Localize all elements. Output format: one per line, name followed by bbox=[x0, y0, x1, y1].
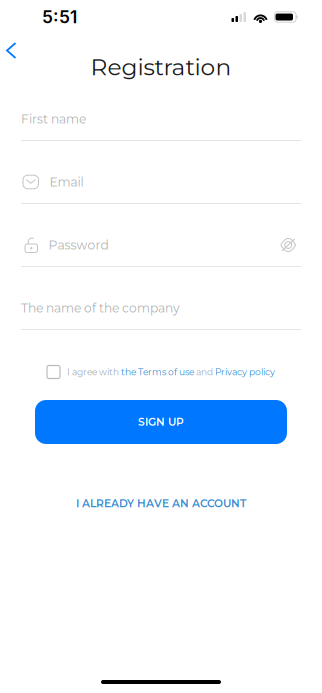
staticText: Privacy policy bbox=[215, 366, 275, 378]
staticText: I ALREADY HAVE AN ACCOUNT bbox=[76, 497, 246, 510]
button[interactable]: I ALREADY HAVE AN ACCOUNT bbox=[62, 491, 260, 516]
staticText: the Terms of use bbox=[121, 366, 194, 378]
staticText: and bbox=[194, 366, 215, 378]
staticText: Email bbox=[49, 174, 83, 189]
button[interactable]: SIGN UP bbox=[35, 400, 287, 444]
button[interactable]: I agree with the terms bbox=[47, 365, 60, 378]
staticText: I agree with bbox=[67, 366, 121, 378]
staticText: The name of the company bbox=[21, 300, 180, 315]
staticText: 5:51 bbox=[42, 6, 77, 27]
staticText: Registration bbox=[90, 53, 231, 81]
staticText: Password bbox=[48, 237, 108, 252]
button[interactable]: Back bbox=[0, 34, 25, 67]
staticText: SIGN UP bbox=[138, 415, 184, 428]
button[interactable]: Show password bbox=[276, 235, 301, 254]
button[interactable]: Privacy policy bbox=[215, 366, 275, 378]
button[interactable]: the Terms of use bbox=[121, 366, 194, 378]
staticText: First name bbox=[21, 111, 86, 126]
